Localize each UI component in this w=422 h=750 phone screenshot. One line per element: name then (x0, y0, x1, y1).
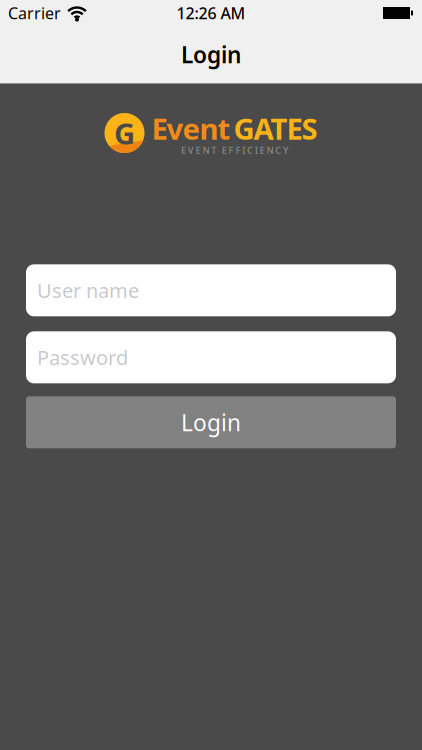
staticText: GATES (233, 109, 317, 148)
staticText: User name (37, 277, 139, 304)
button[interactable]: User name (26, 264, 396, 316)
staticText: EVENT EFFICIENCY (181, 144, 288, 156)
staticText: G (114, 113, 135, 152)
staticText: Carrier (8, 2, 61, 24)
staticText: Password (37, 344, 128, 371)
button[interactable]: Password (26, 331, 396, 383)
staticText: Event (151, 109, 230, 148)
staticText: Login (181, 39, 241, 69)
staticText: 12:26 AM (176, 2, 245, 24)
staticText: Login (181, 407, 241, 437)
button[interactable]: Login (26, 396, 396, 448)
